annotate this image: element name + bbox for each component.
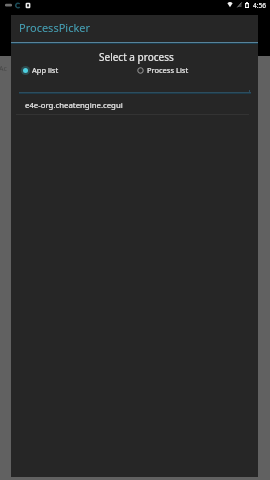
staticText: Select a process [99,50,174,64]
staticText: Ac [0,64,7,74]
staticText: App list [32,65,59,75]
button[interactable]: Process List [135,63,189,78]
staticText: 4:56 [253,1,266,10]
button[interactable]: e4e-org.cheatengine.cegui [11,94,258,116]
button[interactable]: App list [20,63,59,78]
staticText: ProcessPicker [19,20,91,35]
staticText: Process List [147,65,189,75]
staticText: e4e-org.cheatengine.cegui [25,100,123,111]
